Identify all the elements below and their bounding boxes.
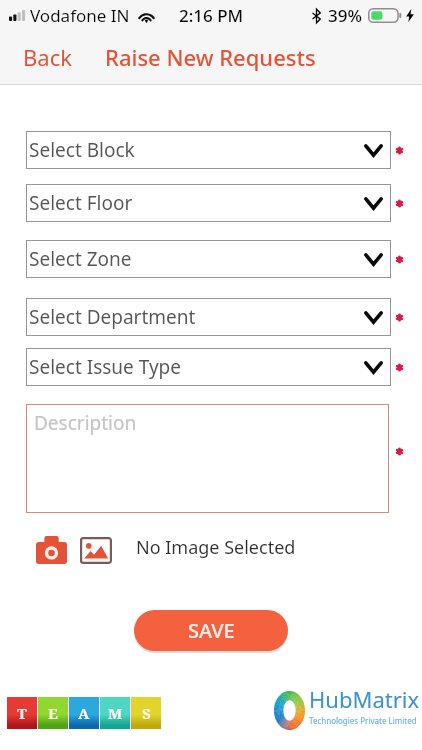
staticText: 39% [328, 4, 362, 27]
button[interactable]: Select Zone [26, 240, 391, 278]
staticText: Technologies Private Limited [309, 715, 417, 726]
button[interactable]: Take photo [34, 534, 69, 566]
staticText: T [17, 703, 27, 723]
button[interactable]: Select Floor [26, 184, 391, 222]
staticText: E [48, 703, 58, 723]
staticText: SAVE [188, 617, 235, 644]
staticText: Select Department [29, 304, 196, 330]
button[interactable]: Select Issue Type [26, 348, 391, 386]
button[interactable]: Description [26, 404, 389, 513]
staticText: A [78, 703, 90, 723]
staticText: Select Issue Type [29, 354, 182, 380]
staticText: 2:16 PM [179, 4, 244, 27]
button[interactable]: Back [12, 36, 83, 78]
staticText: Select Floor [29, 190, 133, 216]
staticText: Vodafone IN [30, 4, 130, 27]
staticText: S [142, 703, 151, 723]
button[interactable]: Select Block [26, 131, 391, 169]
staticText: Select Block [29, 137, 135, 163]
button[interactable]: Select Department [26, 298, 391, 336]
staticText: Raise New Requests [105, 42, 316, 72]
staticText: Select Zone [29, 246, 132, 272]
button[interactable]: Choose image from gallery [78, 535, 114, 566]
staticText: HubMatrix [309, 684, 420, 714]
staticText: Description [34, 410, 137, 436]
staticText: No Image Selected [136, 535, 296, 560]
staticText: M [108, 703, 123, 723]
button[interactable]: SAVE [134, 610, 288, 651]
staticText: Back [23, 42, 72, 72]
